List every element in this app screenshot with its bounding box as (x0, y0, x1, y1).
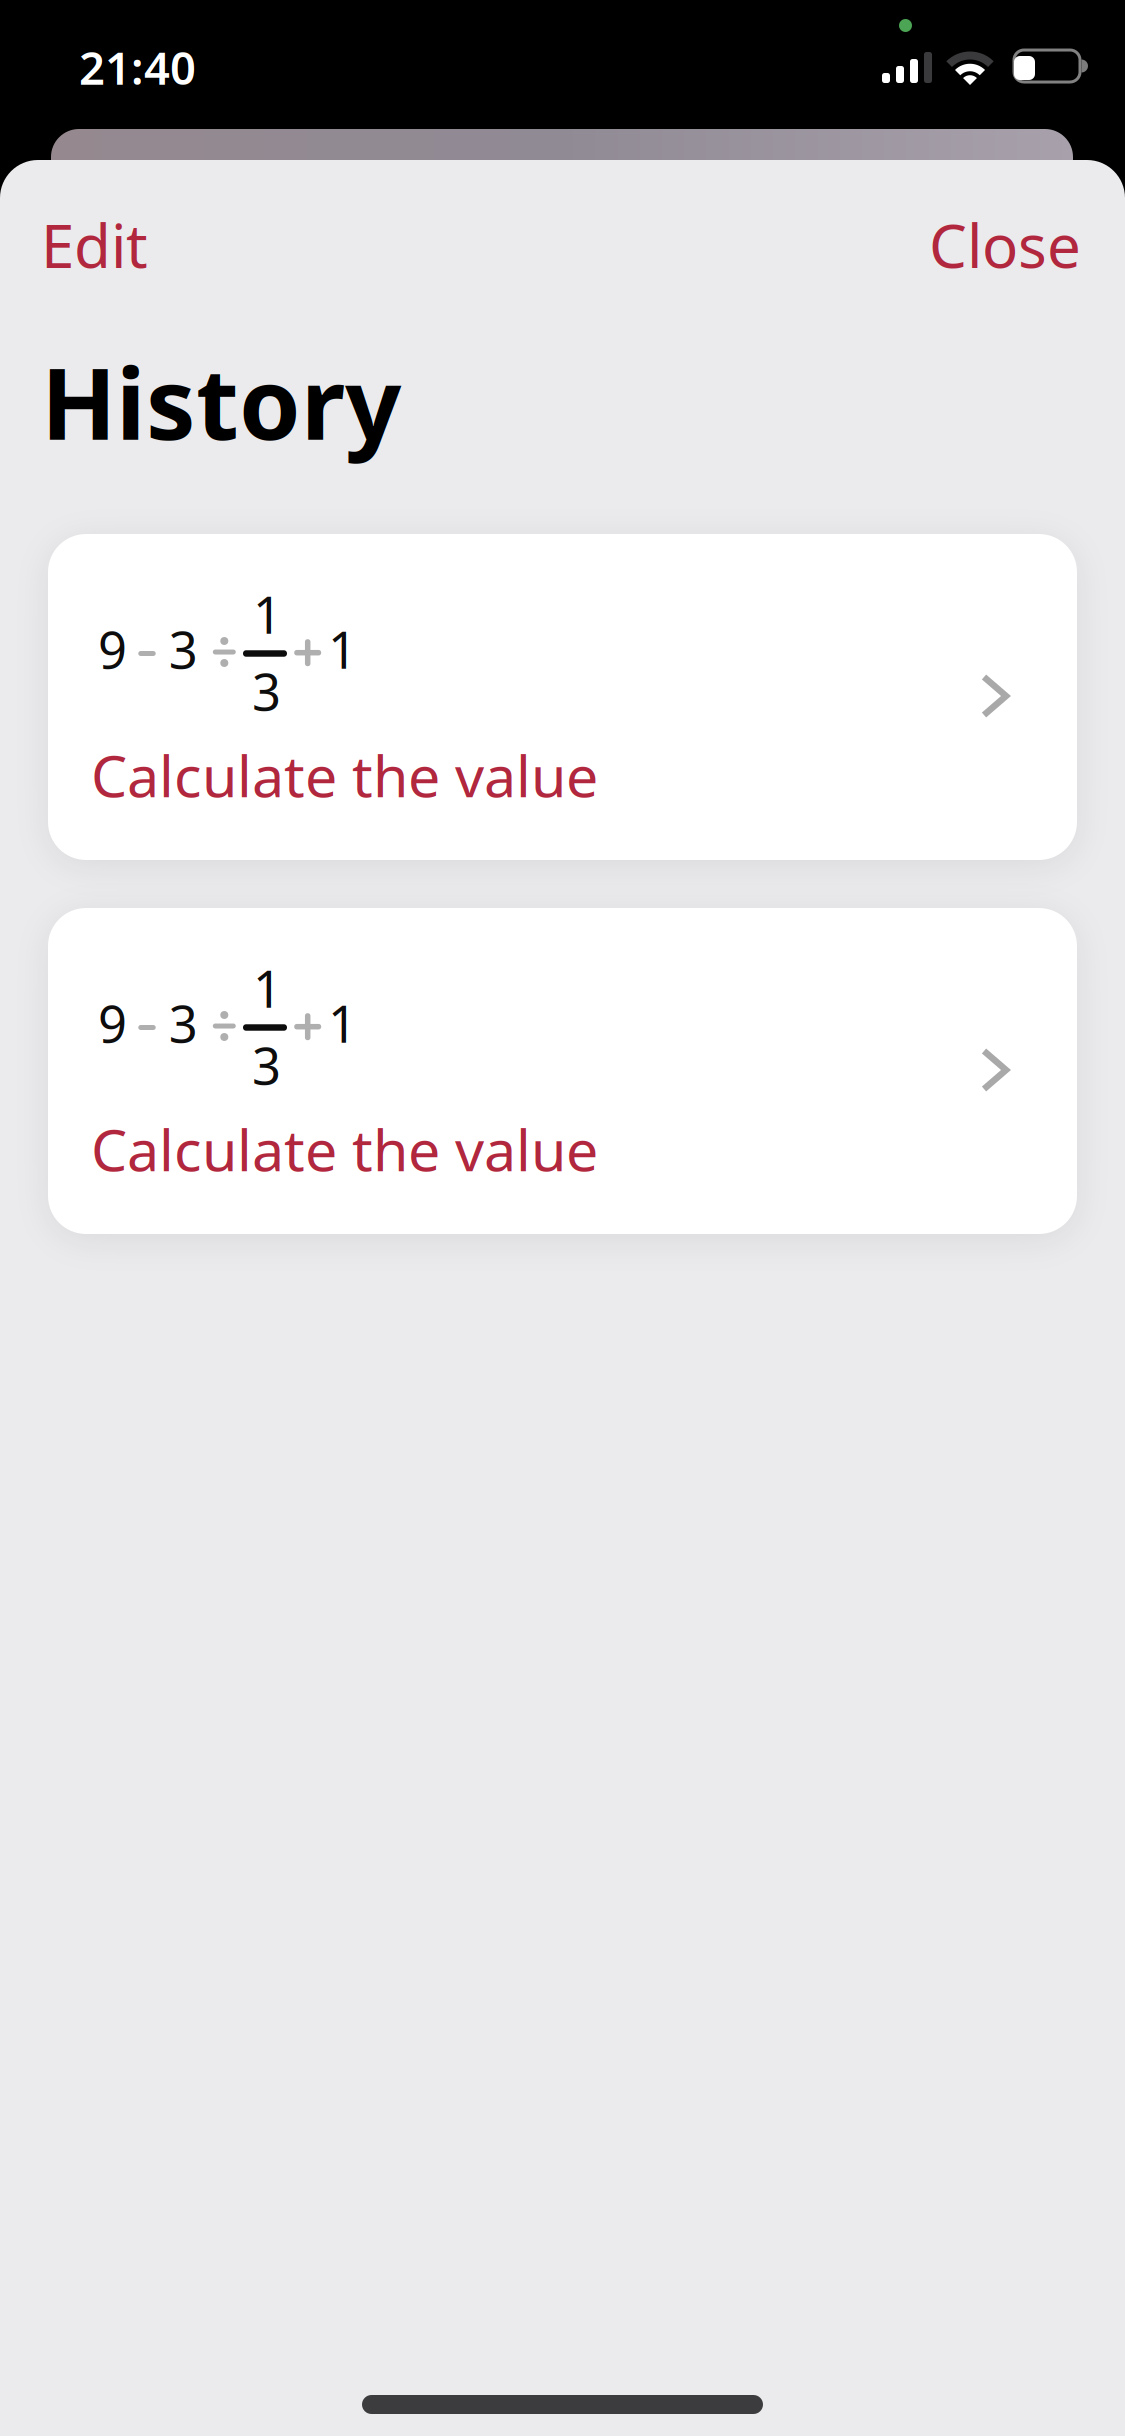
button[interactable]: Close (929, 205, 1081, 285)
staticText: 21:40 (79, 37, 196, 97)
staticText: 1 (328, 615, 357, 683)
button[interactable]: 9 (48, 534, 1077, 860)
staticText: Close (929, 205, 1081, 285)
staticText: 3 (252, 657, 281, 725)
staticText: 1 (253, 954, 282, 1022)
staticText: 1 (253, 580, 282, 648)
button[interactable]: Edit (41, 205, 148, 285)
staticText: 9 (98, 989, 127, 1057)
staticText: 1 (328, 989, 357, 1057)
staticText: 3 (169, 989, 198, 1057)
staticText: 9 (98, 615, 127, 683)
staticText: Calculate the value (91, 737, 598, 813)
staticText: History (41, 336, 401, 467)
staticText: Calculate the value (91, 1111, 598, 1187)
button[interactable]: 9 (48, 908, 1077, 1234)
staticText: 3 (252, 1031, 281, 1099)
staticText: Edit (41, 205, 148, 285)
staticText: 3 (169, 615, 198, 683)
